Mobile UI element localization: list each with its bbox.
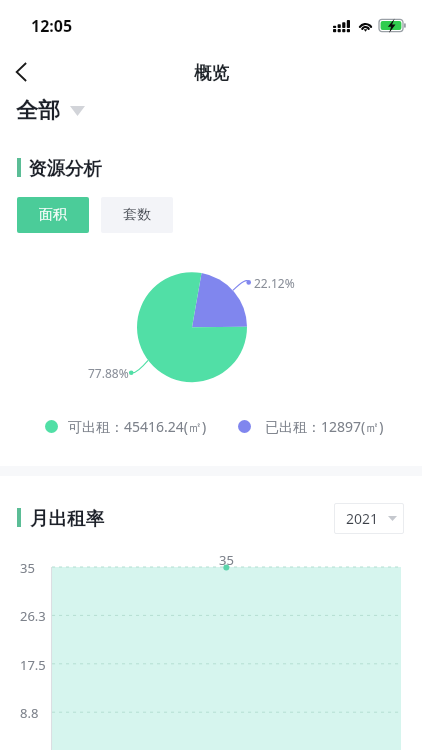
staticText: 套数 xyxy=(123,206,151,224)
staticText: 35 xyxy=(219,551,234,569)
staticText: 22.12% xyxy=(254,275,295,291)
staticText: 资源分析 xyxy=(28,157,102,180)
button[interactable]: 2021 xyxy=(334,503,404,534)
staticText: 2021 xyxy=(346,509,379,528)
staticText: 可出租：45416.24(㎡) xyxy=(68,417,207,436)
staticText: 全部 xyxy=(16,97,60,125)
staticText: 概览 xyxy=(194,62,229,84)
staticText: 77.88% xyxy=(88,365,129,381)
staticText: 面积 xyxy=(39,206,67,224)
staticText: 已出租：12897(㎡) xyxy=(265,417,384,436)
staticText: 17.5 xyxy=(20,656,46,674)
staticText: 12:05 xyxy=(31,15,73,37)
button[interactable]: 面积 xyxy=(17,197,89,233)
button[interactable]: 套数 xyxy=(101,197,173,233)
button[interactable]: Back xyxy=(3,54,39,90)
staticText: 35 xyxy=(20,559,35,577)
staticText: 26.3 xyxy=(20,607,46,625)
staticText: 月出租率 xyxy=(30,507,104,530)
staticText: 8.8 xyxy=(20,704,39,722)
button[interactable]: 全部 xyxy=(16,97,85,125)
